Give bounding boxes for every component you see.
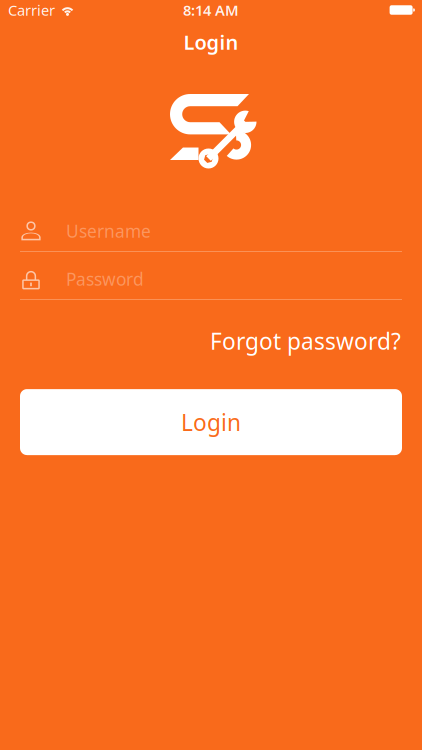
button[interactable]: Login bbox=[20, 389, 402, 455]
staticText: Login bbox=[183, 29, 238, 55]
staticText: Password bbox=[66, 267, 144, 290]
staticText: 8:14 AM bbox=[183, 0, 239, 20]
staticText: Username bbox=[66, 219, 151, 242]
staticText: Login bbox=[181, 407, 241, 437]
button[interactable]: Forgot password? bbox=[210, 322, 401, 360]
staticText: Forgot password? bbox=[210, 326, 401, 356]
staticText: Carrier bbox=[8, 0, 55, 20]
